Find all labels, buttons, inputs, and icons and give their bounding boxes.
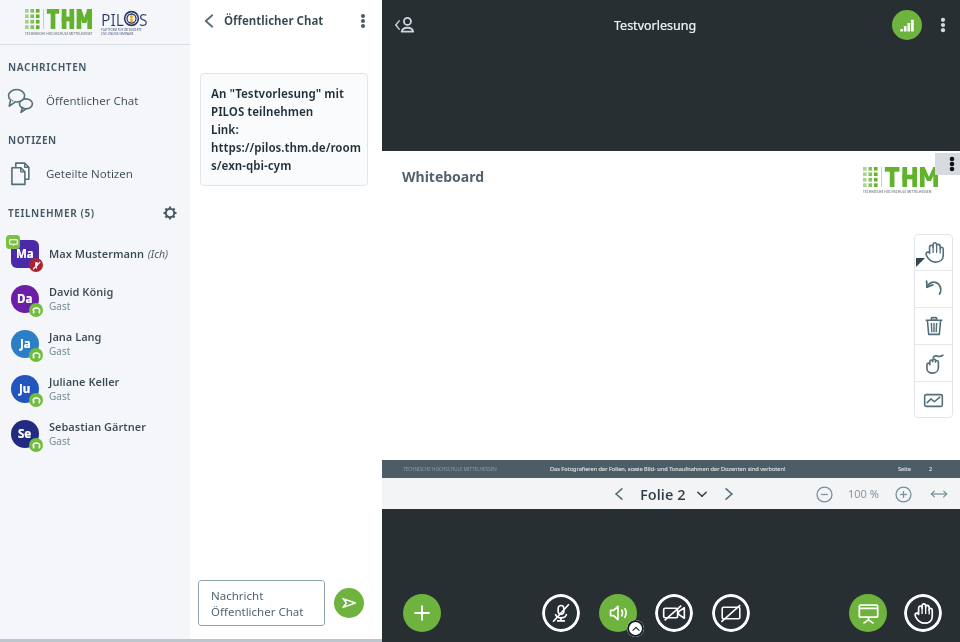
button[interactable]: Vorherige Folie bbox=[608, 483, 630, 505]
staticText: Seite bbox=[898, 465, 911, 473]
button[interactable]: Senden bbox=[334, 588, 364, 618]
staticText: PIL bbox=[101, 9, 124, 28]
staticText: Geteilte Notizen bbox=[46, 166, 133, 182]
button[interactable]: Graph bbox=[914, 382, 953, 418]
staticText: 2 bbox=[929, 465, 933, 473]
button[interactable]: Aktionen bbox=[403, 594, 441, 632]
button[interactable]: Ma bbox=[0, 231, 190, 276]
staticText: Ju bbox=[19, 381, 31, 397]
staticText: Folie 2 bbox=[640, 484, 686, 504]
staticText: Testvorlesung bbox=[614, 17, 697, 34]
staticText: TECHNISCHE HOCHSCHULE MITTELHESSEN bbox=[403, 466, 497, 472]
button[interactable]: Zeichnen bbox=[914, 345, 953, 381]
staticText: Jana Lang bbox=[49, 329, 102, 344]
staticText: Gast bbox=[49, 299, 71, 313]
button[interactable]: Nachricht Öffentlicher Chat bbox=[198, 580, 325, 626]
button[interactable]: Zurück bbox=[198, 10, 220, 32]
button[interactable]: Geteilte Notizen bbox=[0, 155, 190, 193]
button[interactable]: Verbindungsqualität bbox=[892, 10, 922, 40]
button[interactable]: Whiteboard Optionen bbox=[935, 153, 960, 175]
staticText: Sebastian Gärtner bbox=[49, 419, 147, 434]
staticText: Gast bbox=[49, 389, 71, 403]
button[interactable]: Kamera freigeben bbox=[655, 594, 693, 632]
staticText: 100 % bbox=[848, 486, 879, 501]
button[interactable]: Audio bbox=[599, 594, 637, 632]
button[interactable]: Vergrößern bbox=[891, 482, 915, 506]
button[interactable]: Öffentlicher Chat bbox=[0, 82, 190, 120]
staticText: Da bbox=[17, 291, 33, 307]
button[interactable]: Chat Optionen bbox=[352, 10, 374, 32]
staticText: Whiteboard bbox=[402, 167, 485, 186]
button[interactable]: Mikrofon stumm schalten bbox=[542, 594, 580, 632]
staticText: Gast bbox=[49, 344, 71, 358]
button[interactable]: Rückgängig bbox=[914, 271, 953, 307]
staticText: An "Testvorlesung" mit PILOS teilnehmen … bbox=[211, 86, 361, 173]
button[interactable]: Verkleinern bbox=[812, 482, 836, 506]
staticText: NOTIZEN bbox=[8, 133, 57, 147]
button[interactable]: Hand heben bbox=[904, 594, 942, 632]
staticText: TECHNISCHE HOCHSCHULE MITTELHESSEN bbox=[25, 32, 92, 36]
staticText: TEILNEHMER (5) bbox=[8, 206, 95, 220]
staticText: Se bbox=[18, 426, 32, 442]
staticText: Max Mustermann bbox=[49, 246, 145, 261]
staticText: Öffentlicher Chat bbox=[46, 93, 139, 109]
button[interactable]: Optionen bbox=[933, 15, 953, 35]
button[interactable]: Se bbox=[0, 411, 190, 456]
staticText: Das Fotografieren der Folien, sowie Bild… bbox=[550, 465, 786, 473]
button[interactable]: Ju bbox=[0, 366, 190, 411]
button[interactable]: Folie 2 bbox=[638, 484, 710, 504]
staticText: NACHRICHTEN bbox=[8, 60, 87, 74]
staticText: Ja bbox=[20, 336, 31, 352]
button[interactable]: Teilnehmer Einstellungen bbox=[160, 203, 180, 223]
staticText: Nachricht Öffentlicher Chat bbox=[211, 588, 304, 619]
button[interactable]: Da bbox=[0, 276, 190, 321]
button[interactable]: Bildschirm freigeben bbox=[712, 594, 750, 632]
button[interactable]: Präsentation bbox=[849, 594, 887, 632]
staticText: Gast bbox=[49, 434, 71, 448]
button[interactable]: Hand verschieben bbox=[914, 234, 953, 270]
staticText: S bbox=[139, 9, 148, 28]
staticText: (Ich) bbox=[145, 247, 169, 261]
staticText: Ma bbox=[16, 246, 34, 262]
staticText: Juliane Keller bbox=[49, 374, 120, 389]
button[interactable]: Audio Optionen bbox=[627, 620, 644, 637]
button[interactable]: Nächste Folie bbox=[718, 483, 740, 505]
button[interactable]: Ja bbox=[0, 321, 190, 366]
staticText: PLATTFORM FÜR INTEGRIERTE LIVE-ONLINE-SE… bbox=[101, 28, 142, 36]
staticText: Öffentlicher Chat bbox=[224, 13, 324, 29]
button[interactable]: An Breite anpassen bbox=[929, 484, 949, 504]
staticText: TECHNISCHE HOCHSCHULE MITTELHESSEN bbox=[863, 190, 932, 194]
button[interactable]: Löschen bbox=[914, 308, 953, 344]
button[interactable]: Teilnehmerliste bbox=[393, 12, 419, 38]
staticText: David König bbox=[49, 284, 114, 299]
